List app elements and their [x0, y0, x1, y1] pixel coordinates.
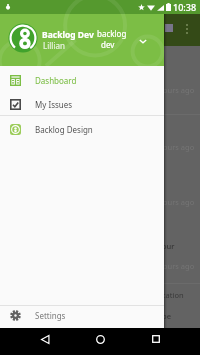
staticText: ours ago: [163, 197, 195, 207]
staticText: be: [162, 311, 171, 321]
button[interactable]: Dashboard: [0, 69, 164, 92]
staticText: Backlog Dev: [42, 29, 94, 41]
staticText: backlog: [97, 28, 127, 39]
staticText: our: [162, 241, 175, 251]
button[interactable]: Home: [89, 328, 111, 350]
staticText: Backlog Design: [35, 124, 93, 135]
button[interactable]: Switch space: [136, 34, 149, 47]
staticText: ours ago: [163, 261, 195, 271]
staticText: Lillian: [43, 40, 65, 51]
staticText: Dashboard: [35, 75, 77, 86]
staticText: ours ago: [163, 85, 195, 95]
button[interactable]: Recent apps: [145, 328, 167, 350]
button[interactable]: Backlog Design: [0, 118, 164, 141]
staticText: Settings: [35, 310, 66, 321]
button[interactable]: More options: [186, 24, 188, 34]
staticText: ours ago: [163, 142, 195, 152]
staticText: cation: [162, 290, 184, 300]
staticText: My Issues: [35, 99, 73, 110]
staticText: dev: [101, 39, 115, 50]
button[interactable]: Back: [34, 328, 56, 350]
staticText: 10:38: [173, 1, 197, 13]
button[interactable]: My Issues: [0, 93, 164, 116]
button[interactable]: Settings: [0, 304, 164, 327]
